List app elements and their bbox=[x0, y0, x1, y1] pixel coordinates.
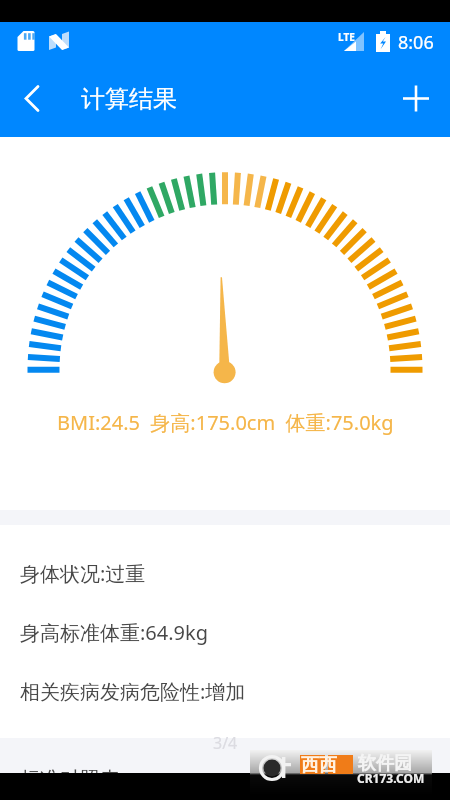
button[interactable]: Back bbox=[0, 60, 56, 137]
staticText: 软件园 bbox=[358, 752, 412, 775]
staticText: CR173.COM bbox=[357, 770, 425, 786]
button[interactable]: 身高标准体重:64.9kg bbox=[0, 603, 450, 662]
staticText: LTE bbox=[338, 30, 355, 44]
staticText: 身高标准体重:64.9kg bbox=[20, 619, 209, 646]
button[interactable]: 身体状况:过重 bbox=[0, 544, 450, 603]
staticText: 标准对照表 bbox=[20, 767, 120, 792]
staticText: 3/4 bbox=[213, 732, 238, 754]
staticText: 相关疾病发病危险性:增加 bbox=[20, 678, 246, 705]
staticText: BMI:24.5 身高:175.0cm 体重:75.0kg bbox=[57, 409, 394, 436]
staticText: 计算结果 bbox=[81, 84, 177, 114]
staticText: 身体状况:过重 bbox=[20, 560, 146, 587]
staticText: 8:06 bbox=[398, 30, 434, 55]
staticText: 西西 bbox=[301, 754, 337, 777]
button[interactable]: 相关疾病发病危险性:增加 bbox=[0, 662, 450, 721]
button[interactable]: Add bbox=[390, 60, 450, 137]
